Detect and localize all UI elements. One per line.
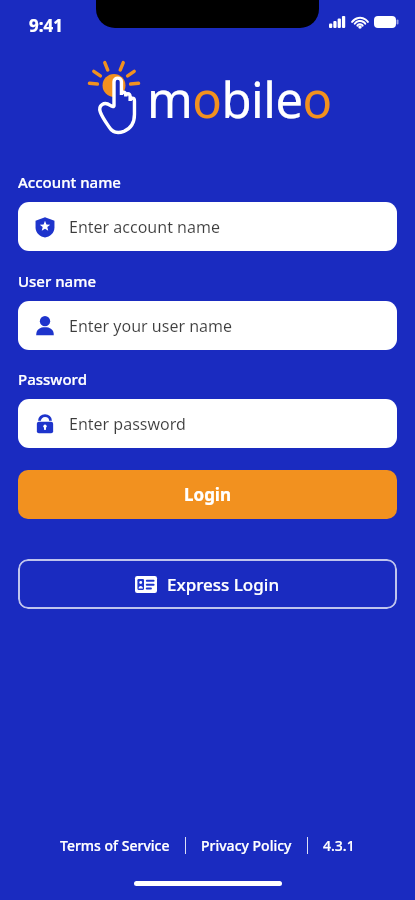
button[interactable]: Enter your user name xyxy=(18,301,397,350)
button[interactable]: Enter password xyxy=(18,399,397,448)
button[interactable]: Privacy Policy xyxy=(199,836,294,855)
button[interactable]: Login xyxy=(18,470,397,519)
staticText: Enter your user name xyxy=(69,315,233,337)
staticText: Login xyxy=(184,483,232,506)
button[interactable]: Enter account name xyxy=(18,202,397,251)
staticText: Password xyxy=(18,369,87,389)
staticText: 9:41 xyxy=(29,14,63,37)
staticText: 4.3.1 xyxy=(323,836,355,855)
staticText: Enter account name xyxy=(69,216,220,238)
staticText: User name xyxy=(18,271,97,291)
button[interactable]: Terms of Service xyxy=(58,836,172,855)
button[interactable]: Express Login xyxy=(18,559,397,609)
staticText: Account name xyxy=(18,172,121,192)
staticText: Enter password xyxy=(69,413,186,435)
staticText: mobileo xyxy=(147,66,332,133)
staticText: Express Login xyxy=(167,573,280,596)
